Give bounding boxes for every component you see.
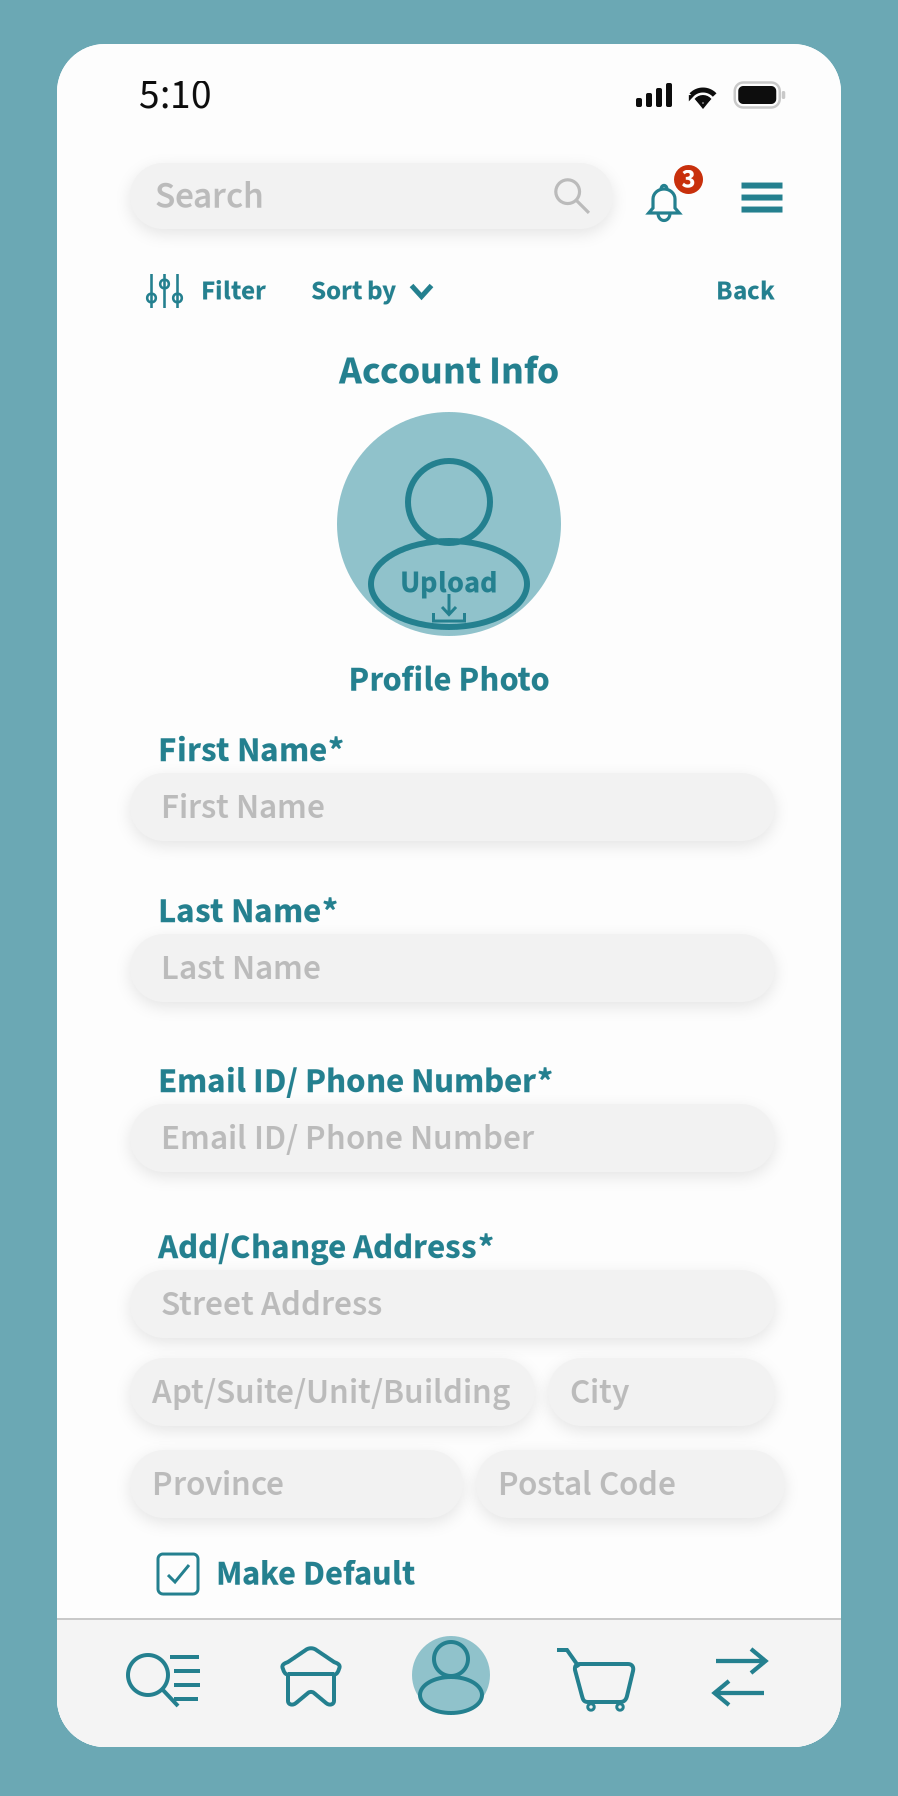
button[interactable]: Sort by — [311, 267, 434, 315]
button[interactable]: Back — [716, 267, 775, 315]
staticText: Sort by — [311, 271, 396, 310]
staticText: Account Info — [339, 342, 559, 399]
staticText: Apt/Suite/Unit/Building — [152, 1367, 510, 1417]
button[interactable]: Last Name — [130, 934, 775, 1002]
staticText: * — [322, 886, 338, 936]
button[interactable]: Make Default — [130, 1548, 775, 1600]
button[interactable]: Cart — [535, 1624, 657, 1734]
staticText: Postal Code — [498, 1459, 676, 1509]
staticText: * — [478, 1222, 494, 1272]
staticText: Add/Change Address — [158, 1222, 477, 1272]
button[interactable]: Search — [108, 1626, 222, 1736]
staticText: Search — [155, 169, 264, 223]
button[interactable]: Menu — [732, 163, 792, 229]
button[interactable]: City — [548, 1358, 775, 1426]
button[interactable]: Search — [130, 163, 613, 229]
button[interactable]: First Name — [130, 773, 775, 841]
staticText: Back — [716, 271, 775, 310]
button[interactable]: Street Address — [130, 1270, 775, 1338]
button[interactable]: Transfers — [692, 1622, 788, 1732]
button[interactable]: Filter — [149, 267, 266, 315]
staticText: Filter — [201, 271, 266, 310]
staticText: Province — [152, 1459, 284, 1509]
button[interactable]: Postal Code — [476, 1450, 785, 1518]
button[interactable]: Upload profile photo — [337, 412, 561, 636]
staticText: 5:10 — [139, 66, 212, 124]
staticText: Profile Photo — [348, 655, 549, 705]
button[interactable]: Email ID/ Phone Number — [130, 1104, 775, 1172]
staticText: Street Address — [161, 1279, 382, 1329]
staticText: Email ID/ Phone Number — [161, 1113, 534, 1163]
staticText: First Name — [161, 782, 325, 832]
button[interactable]: Profile — [392, 1620, 510, 1730]
staticText: * — [537, 1056, 553, 1106]
staticText: City — [570, 1367, 629, 1417]
staticText: Email ID/ Phone Number — [158, 1056, 536, 1106]
staticText: Make Default — [216, 1549, 415, 1599]
button[interactable]: Apt/Suite/Unit/Building — [130, 1358, 535, 1426]
button[interactable]: Notifications — [647, 163, 707, 229]
staticText: * — [328, 725, 344, 775]
staticText: Upload — [400, 561, 498, 605]
staticText: 3 — [681, 160, 695, 198]
staticText: Last Name — [158, 886, 321, 936]
staticText: First Name — [158, 725, 327, 775]
staticText: Last Name — [161, 943, 321, 993]
button[interactable]: Province — [130, 1450, 463, 1518]
button[interactable]: Home — [260, 1622, 362, 1732]
